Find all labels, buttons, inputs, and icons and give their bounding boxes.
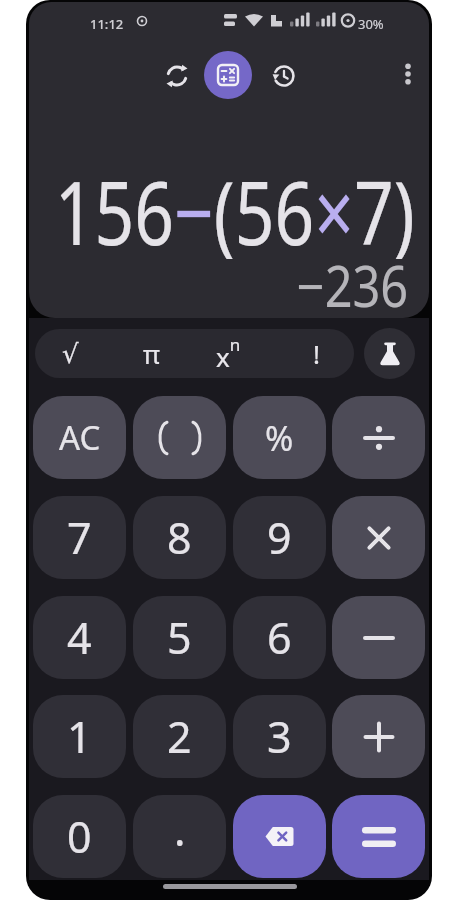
staticText: 4 [67,608,92,667]
button[interactable] [233,795,326,878]
staticText: . [174,800,186,859]
button[interactable]: xn [198,329,258,378]
staticText: % [265,415,294,461]
staticText: 0 [67,807,92,866]
button[interactable]: 8 [133,496,226,579]
staticText: xn [216,333,241,374]
staticText: 2 [167,707,192,766]
staticText: 156−(56×7) [55,151,415,271]
button[interactable]: 6 [233,596,326,679]
button[interactable]: % [233,396,326,479]
button[interactable]: AC [33,396,126,479]
staticText: 5 [167,608,192,667]
staticText: 8 [167,508,192,567]
staticText: AC [59,415,101,460]
button[interactable]: 3 [233,695,326,778]
button[interactable]: √ [40,329,100,378]
staticText: 3 [267,707,292,766]
staticText: √ [62,339,79,369]
button[interactable] [267,59,300,92]
staticText: 7 [67,508,92,567]
staticText: 30% [358,15,384,33]
button[interactable]: 1 [33,695,126,778]
button[interactable]: 0 [33,795,126,878]
button[interactable]: π [121,329,181,378]
button[interactable] [332,396,425,479]
staticText: 6 [267,608,292,667]
button[interactable] [332,695,425,778]
button[interactable]: 9 [233,496,326,579]
button[interactable]: 7 [33,496,126,579]
staticText: −236 [297,247,409,323]
button[interactable]: 5 [133,596,226,679]
button[interactable] [160,59,193,92]
button[interactable]: 2 [133,695,226,778]
button[interactable] [204,51,252,99]
button[interactable]: 4 [33,596,126,679]
button[interactable] [133,396,226,479]
button[interactable]: ! [286,329,346,378]
button[interactable] [332,496,425,579]
staticText: ! [313,336,320,371]
button[interactable] [394,59,422,89]
staticText: 11:12 [90,15,124,33]
staticText: 1 [67,707,92,766]
staticText: π [143,336,160,371]
button[interactable]: . [133,795,226,878]
button[interactable] [332,795,425,878]
staticText: 9 [267,508,292,567]
button[interactable] [364,328,415,379]
button[interactable] [332,596,425,679]
